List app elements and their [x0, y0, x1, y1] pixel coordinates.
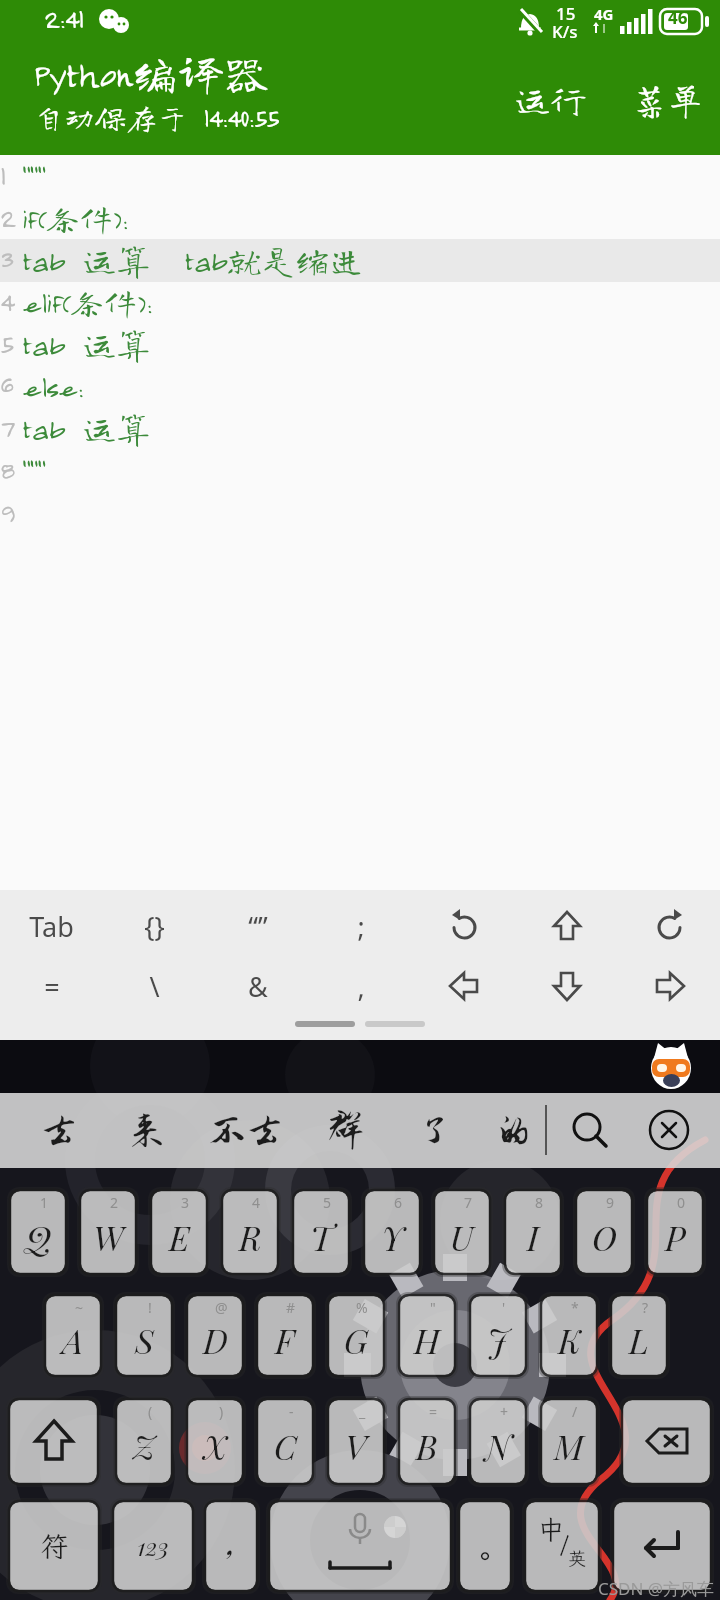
staticText: 2: [0, 201, 15, 233]
button[interactable]: [515, 896, 618, 956]
staticText: 符: [40, 1528, 69, 1565]
button[interactable]: ,: [309, 956, 412, 1016]
staticText: /: [560, 1528, 570, 1562]
staticText: #: [286, 1298, 296, 1317]
button[interactable]: [8, 1398, 99, 1485]
button[interactable]: [618, 896, 720, 956]
button[interactable]: 123: [112, 1500, 194, 1592]
staticText: 1: [40, 1193, 49, 1212]
button[interactable]: S: [115, 1294, 173, 1377]
button[interactable]: [644, 1105, 694, 1155]
staticText: B: [416, 1423, 438, 1468]
button[interactable]: J: [469, 1294, 527, 1377]
staticText: =: [44, 968, 60, 1005]
button[interactable]: K: [540, 1294, 598, 1377]
button[interactable]: M: [540, 1398, 598, 1485]
staticText: -: [289, 1402, 294, 1421]
button[interactable]: L: [610, 1294, 668, 1377]
button[interactable]: [565, 1105, 615, 1155]
button[interactable]: [268, 1500, 452, 1592]
staticText: 。: [470, 1536, 500, 1576]
button[interactable]: 了: [416, 1100, 454, 1162]
staticText: 5: [0, 327, 13, 359]
button[interactable]: {}: [103, 896, 206, 956]
button[interactable]: B: [398, 1398, 456, 1485]
button[interactable]: U: [433, 1189, 491, 1275]
button[interactable]: [621, 1398, 712, 1485]
staticText: ,: [357, 968, 365, 1005]
staticText: G: [344, 1317, 368, 1362]
button[interactable]: Q: [9, 1189, 67, 1275]
button[interactable]: 去: [40, 1100, 78, 1162]
staticText: E: [169, 1214, 190, 1259]
button[interactable]: &: [206, 956, 309, 1016]
button[interactable]: [412, 896, 515, 956]
button[interactable]: G: [327, 1294, 385, 1377]
button[interactable]: O: [575, 1189, 633, 1275]
button[interactable]: 运行: [505, 74, 595, 124]
button[interactable]: 符: [8, 1500, 100, 1592]
staticText: ;: [357, 908, 365, 945]
staticText: M: [554, 1423, 584, 1468]
staticText: R: [239, 1214, 262, 1259]
button[interactable]: [618, 956, 720, 1016]
staticText: 运行: [514, 81, 587, 117]
staticText: 6: [0, 369, 13, 401]
staticText: 9: [606, 1193, 615, 1212]
staticText: else:: [22, 369, 83, 403]
button[interactable]: Y: [363, 1189, 421, 1275]
button[interactable]: F: [256, 1294, 314, 1377]
staticText: I: [527, 1214, 539, 1259]
staticText: S: [135, 1317, 154, 1362]
button[interactable]: [515, 956, 618, 1016]
button[interactable]: V: [327, 1398, 385, 1485]
button[interactable]: R: [221, 1189, 279, 1275]
staticText: D: [203, 1317, 228, 1362]
button[interactable]: ;: [309, 896, 412, 956]
button[interactable]: 。: [458, 1500, 512, 1592]
button[interactable]: A: [44, 1294, 102, 1377]
button[interactable]: N: [469, 1398, 527, 1485]
button[interactable]: I: [504, 1189, 562, 1275]
button[interactable]: E: [150, 1189, 208, 1275]
button[interactable]: =: [0, 956, 103, 1016]
staticText: 1: [0, 159, 6, 191]
button[interactable]: 群: [327, 1100, 365, 1162]
button[interactable]: \: [103, 956, 206, 1016]
staticText: 4G: [594, 4, 614, 24]
staticText: “”: [248, 908, 268, 945]
staticText: C: [274, 1423, 297, 1468]
button[interactable]: D: [186, 1294, 244, 1377]
button[interactable]: W: [79, 1189, 137, 1275]
staticText: V: [345, 1423, 367, 1468]
button[interactable]: X: [186, 1398, 244, 1485]
staticText: 不去: [208, 1110, 284, 1152]
staticText: 7: [464, 1193, 473, 1212]
staticText: 英: [568, 1546, 586, 1570]
button[interactable]: Z: [115, 1398, 173, 1485]
staticText: 15: [556, 2, 576, 25]
button[interactable]: C: [256, 1398, 314, 1485]
staticText: N: [485, 1423, 512, 1468]
staticText: Z: [133, 1423, 156, 1468]
button[interactable]: [412, 956, 515, 1016]
button[interactable]: Tab: [0, 896, 103, 956]
button[interactable]: ,: [204, 1500, 258, 1592]
button[interactable]: 菜单: [622, 74, 712, 124]
staticText: 8: [535, 1193, 544, 1212]
button[interactable]: H: [398, 1294, 456, 1377]
button[interactable]: 的: [495, 1100, 533, 1162]
staticText: T: [310, 1214, 333, 1259]
button[interactable]: 中: [524, 1500, 600, 1592]
button[interactable]: T: [292, 1189, 350, 1275]
button[interactable]: “”: [206, 896, 309, 956]
button[interactable]: [612, 1500, 712, 1592]
button[interactable]: P: [646, 1189, 704, 1275]
staticText: ': [502, 1298, 506, 1317]
button[interactable]: 来: [128, 1100, 166, 1162]
staticText: *: [571, 1298, 579, 1317]
staticText: elif(条件):: [22, 285, 152, 319]
staticText: 的: [495, 1110, 533, 1152]
button[interactable]: 不去: [208, 1100, 284, 1162]
staticText: W: [93, 1214, 124, 1259]
